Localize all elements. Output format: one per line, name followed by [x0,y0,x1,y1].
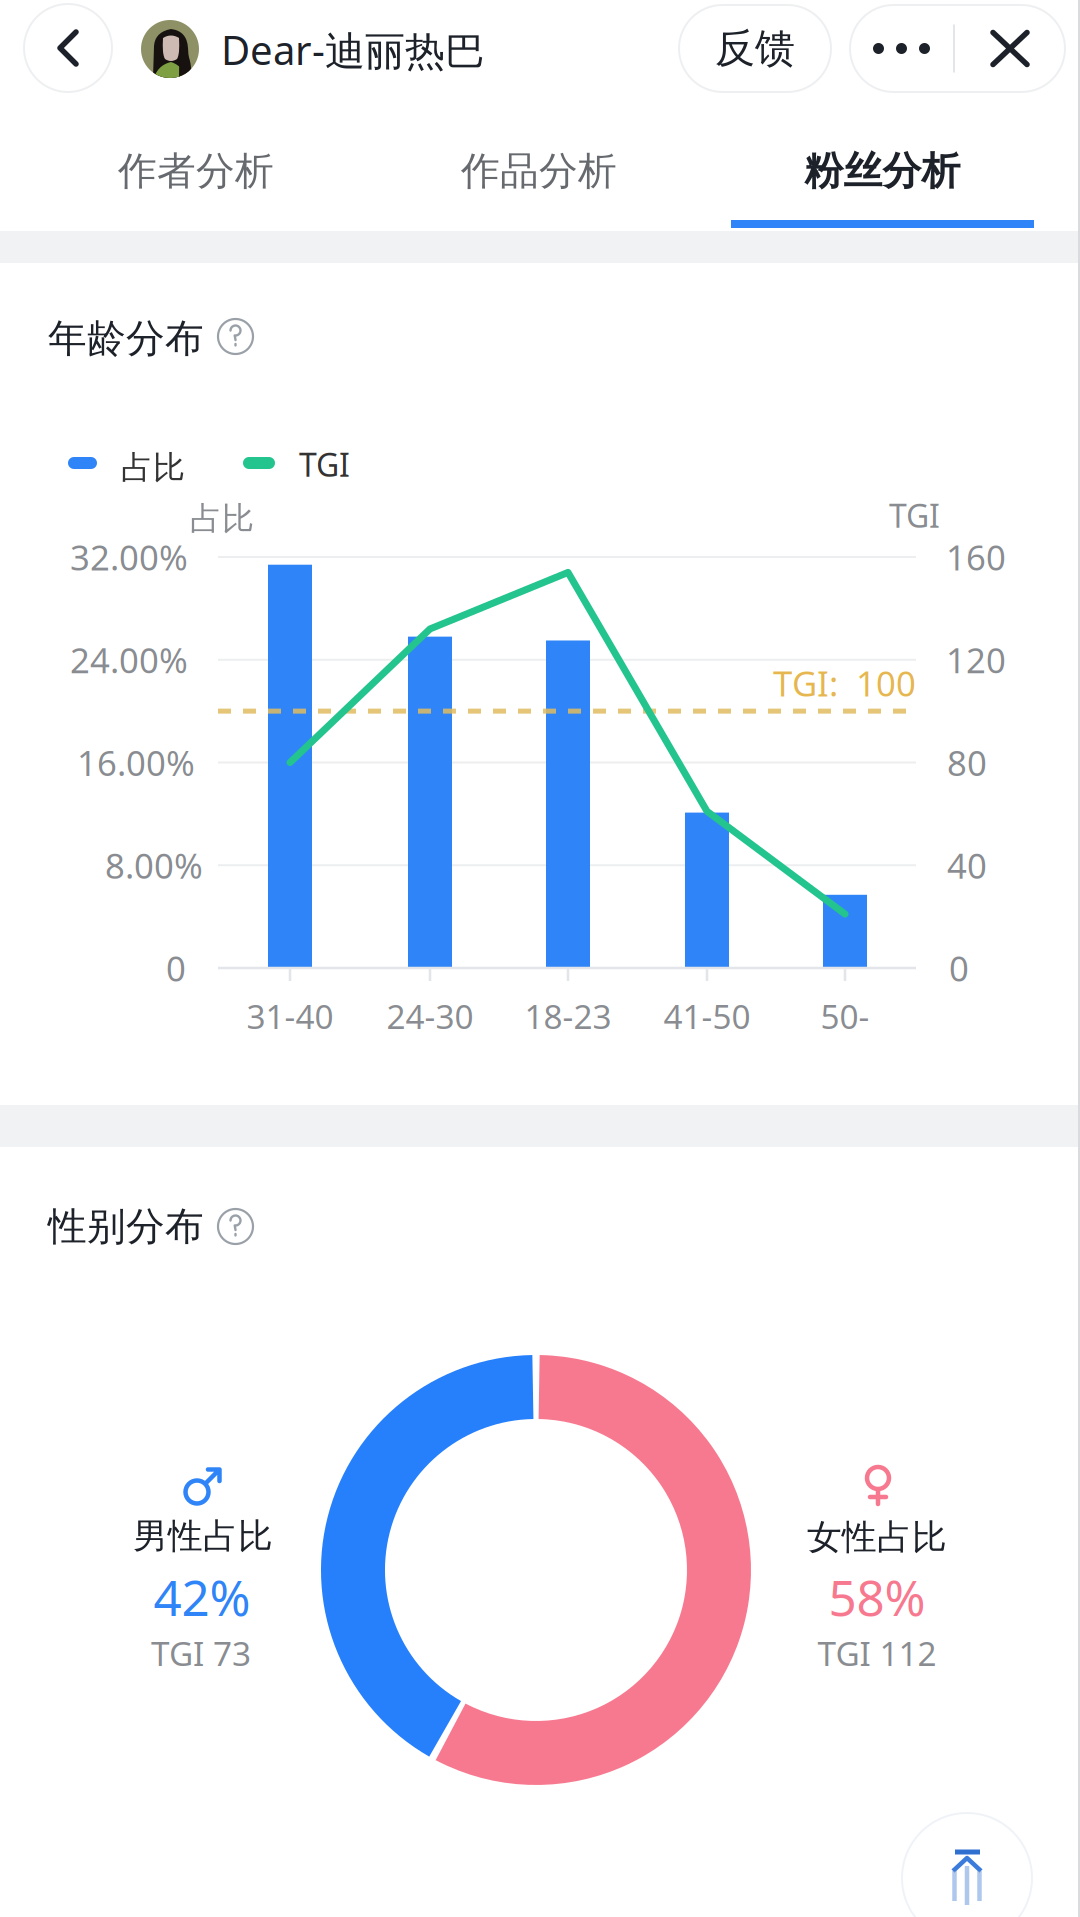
staticText: 24.00% [70,637,188,683]
staticText: 作品分析 [461,147,617,195]
staticText: TGI 112 [817,1631,936,1675]
staticText: 16.00% [77,739,195,785]
staticText: TGI: 100 [773,660,916,706]
staticText: 24-30 [386,994,473,1038]
button[interactable]: Back [24,4,112,92]
staticText: TGI [889,494,940,536]
button[interactable]: More options [850,5,953,92]
staticText: 年龄分布 [48,315,204,362]
staticText: 0 [166,945,186,991]
staticText: 160 [946,534,1006,580]
staticText: 18-23 [524,994,611,1038]
button[interactable]: 反馈 [679,5,831,92]
staticText: TGI 73 [151,1631,251,1675]
staticText: 32.00% [70,534,188,580]
staticText: TGI [299,443,350,485]
button[interactable]: Back to top [902,1813,1032,1917]
button[interactable]: 作品分析 [389,122,689,220]
staticText: 占比 [190,499,254,538]
staticText: Dear-迪丽热巴 [221,23,485,76]
button[interactable]: Close [955,5,1065,92]
staticText: 8.00% [105,842,203,888]
staticText: 80 [947,739,987,785]
staticText: 50- [820,994,869,1038]
staticText: 反馈 [715,24,795,73]
staticText: 42% [153,1564,250,1629]
staticText: 男性占比 [133,1515,273,1558]
staticText: 31-40 [246,994,333,1038]
staticText: 作者分析 [118,147,274,195]
staticText: 占比 [121,448,185,487]
staticText: 41-50 [663,994,750,1038]
staticText: 120 [946,637,1006,683]
staticText: 粉丝分析 [804,147,960,195]
button[interactable]: 作者分析 [46,122,346,220]
staticText: 性别分布 [48,1203,204,1250]
staticText: 58% [828,1564,925,1629]
staticText: 女性占比 [807,1516,947,1559]
button[interactable]: 粉丝分析 [731,122,1034,228]
staticText: 40 [947,842,987,888]
staticText: 0 [949,945,969,991]
